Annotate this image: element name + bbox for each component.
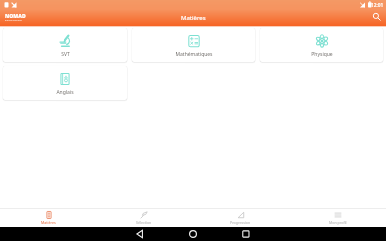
- staticText: Sélection: [136, 220, 152, 225]
- staticText: 12:01: [371, 2, 384, 9]
- button[interactable]: Physique: [260, 28, 383, 62]
- staticText: Mathématiques: [175, 51, 213, 58]
- staticText: Matières: [41, 220, 56, 225]
- button[interactable]: Mon profil: [289, 209, 386, 227]
- staticText: Matières: [181, 14, 206, 22]
- button[interactable]: Matières: [0, 209, 96, 227]
- staticText: EDUCATION: [5, 18, 23, 21]
- button[interactable]: SVT: [3, 28, 127, 62]
- button[interactable]: Progression: [192, 209, 289, 227]
- staticText: Mon profil: [329, 220, 347, 225]
- staticText: Physique: [311, 51, 333, 58]
- staticText: Anglais: [56, 89, 74, 96]
- staticText: SVT: [61, 51, 70, 58]
- staticText: NOMAD: [5, 13, 26, 20]
- button[interactable]: Anglais: [3, 66, 127, 100]
- button[interactable]: Sélection: [96, 209, 192, 227]
- button[interactable]: Mathématiques: [132, 28, 255, 62]
- button[interactable]: Search: [370, 10, 384, 24]
- staticText: Progression: [230, 220, 251, 225]
